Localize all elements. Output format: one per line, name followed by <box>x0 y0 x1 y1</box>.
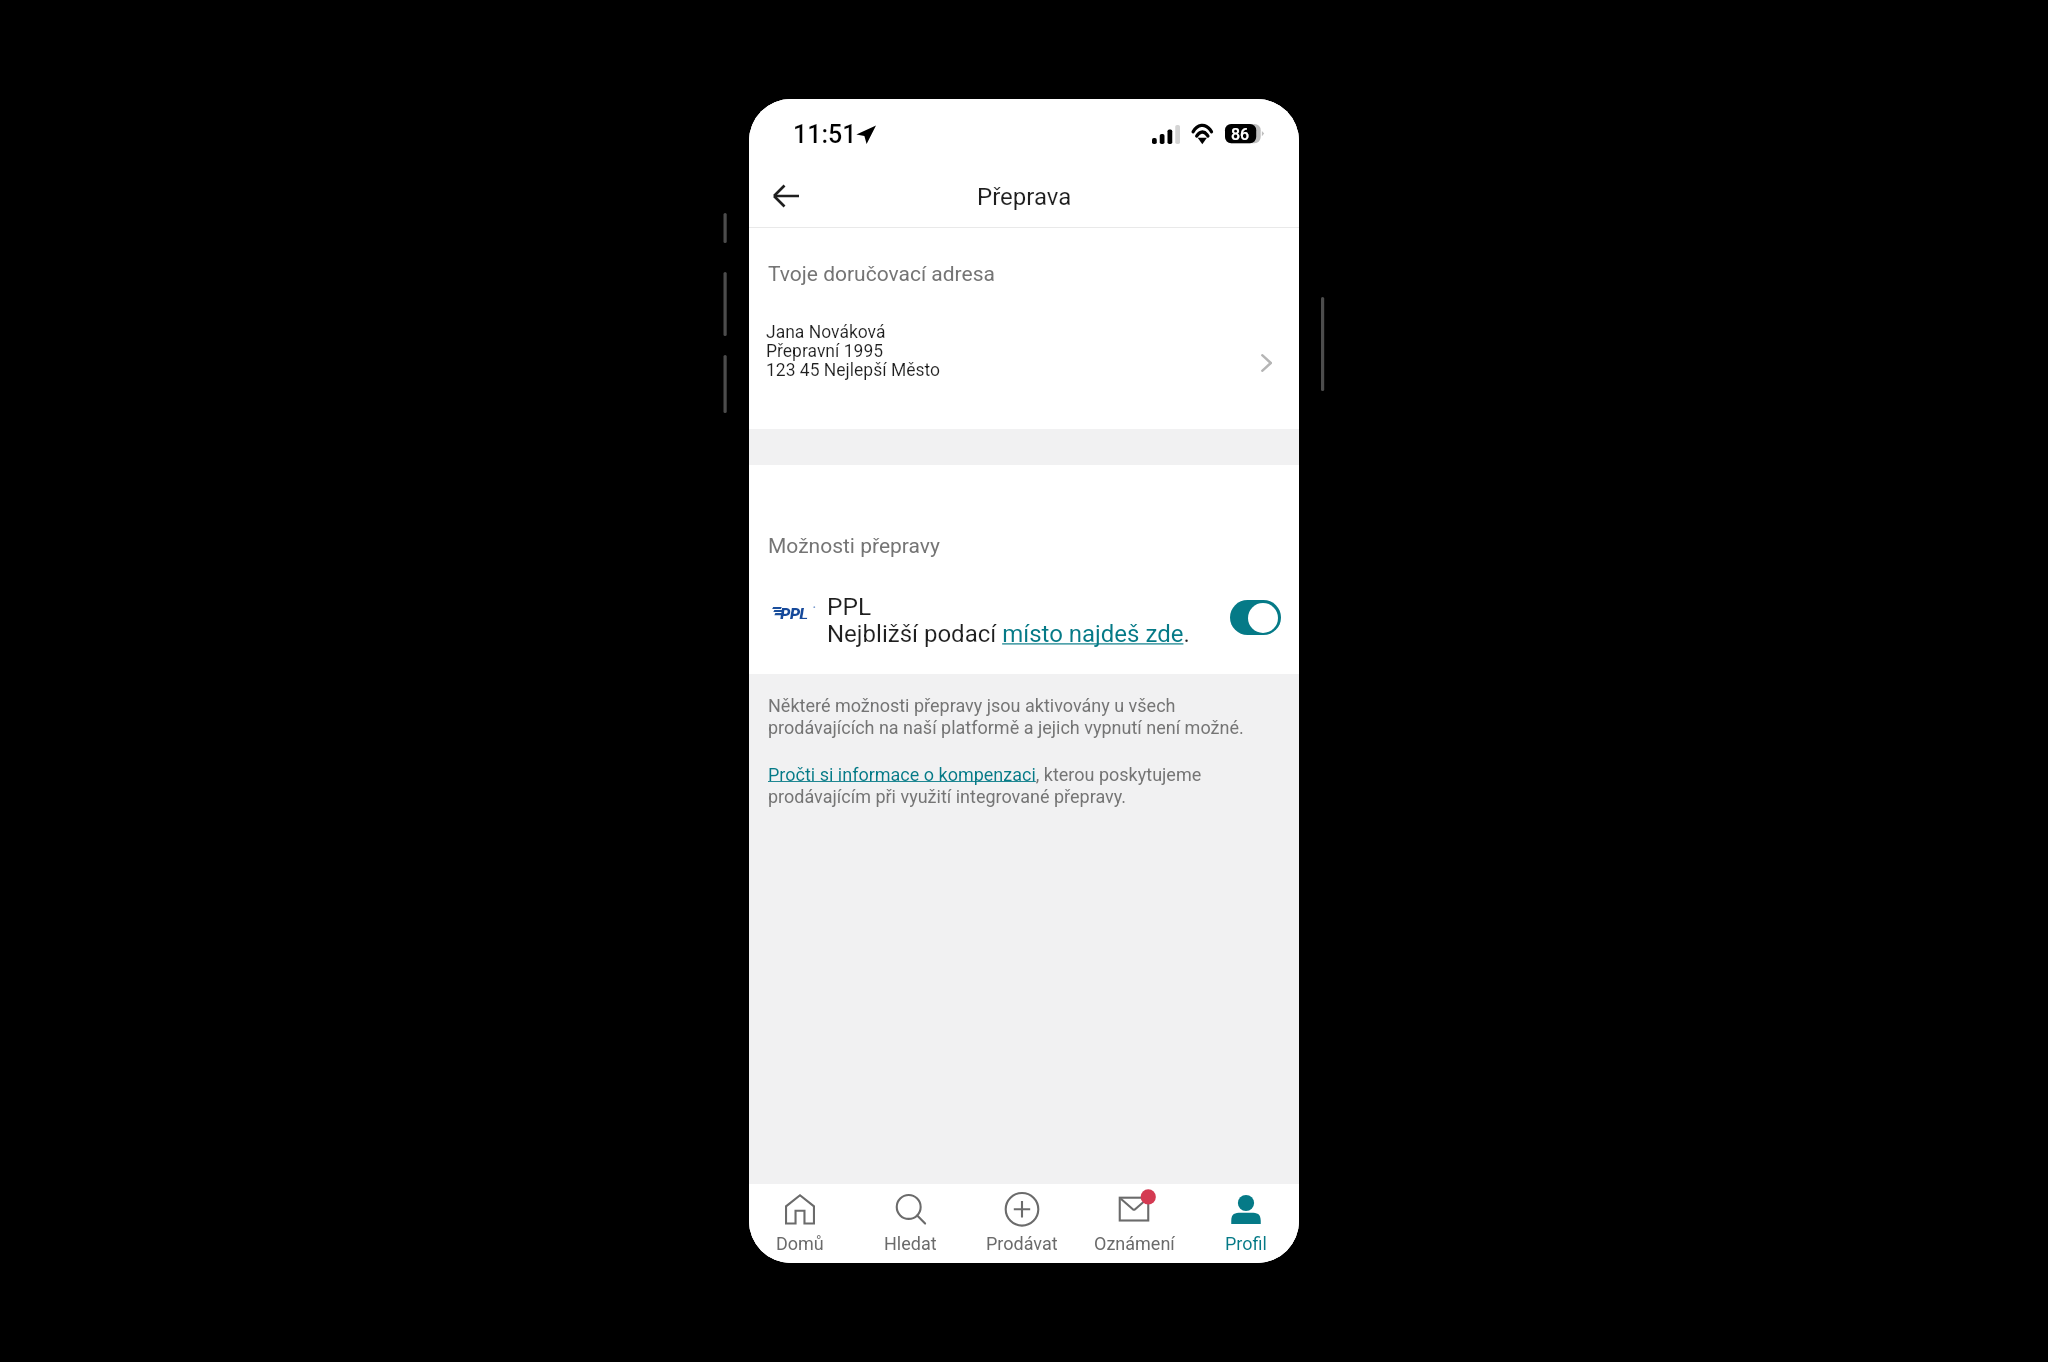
button[interactable]: Profil <box>1190 1184 1299 1263</box>
staticText: PPL <box>827 592 872 621</box>
button[interactable]: Jana Nováková Přepravní 1995 123 45 Nejl… <box>749 304 1299 404</box>
button[interactable]: Prodávat <box>966 1184 1078 1263</box>
staticText: Některé možnosti přepravy jsou aktivován… <box>768 695 1260 739</box>
button[interactable]: Hledat <box>855 1184 966 1263</box>
staticText: Prodávat <box>986 1233 1058 1254</box>
staticText: Nejbližší podací místo najdeš zde. <box>827 620 1190 648</box>
staticText: 11:51 <box>793 120 857 149</box>
staticText: Hledat <box>884 1233 937 1254</box>
button[interactable]: PPL <box>749 588 1299 658</box>
staticText: Pročti si informace o kompenzaci, kterou… <box>768 764 1218 808</box>
staticText: Oznámení <box>1094 1233 1175 1254</box>
staticText: PPL <box>780 605 808 619</box>
staticText: Tvoje doručovací adresa <box>768 262 995 287</box>
staticText: 86 <box>1231 125 1250 144</box>
button[interactable]: Back <box>762 172 810 220</box>
staticText: Jana Nováková Přepravní 1995 123 45 Nejl… <box>766 323 941 380</box>
button[interactable]: Toggle PPL delivery <box>1230 600 1281 635</box>
staticText: Domů <box>776 1233 824 1254</box>
button[interactable]: Domů <box>749 1184 855 1263</box>
staticText: Možnosti přepravy <box>768 534 940 559</box>
staticText: Přeprava <box>977 183 1072 211</box>
button[interactable]: Oznámení <box>1078 1184 1190 1263</box>
staticText: Profil <box>1225 1233 1267 1254</box>
